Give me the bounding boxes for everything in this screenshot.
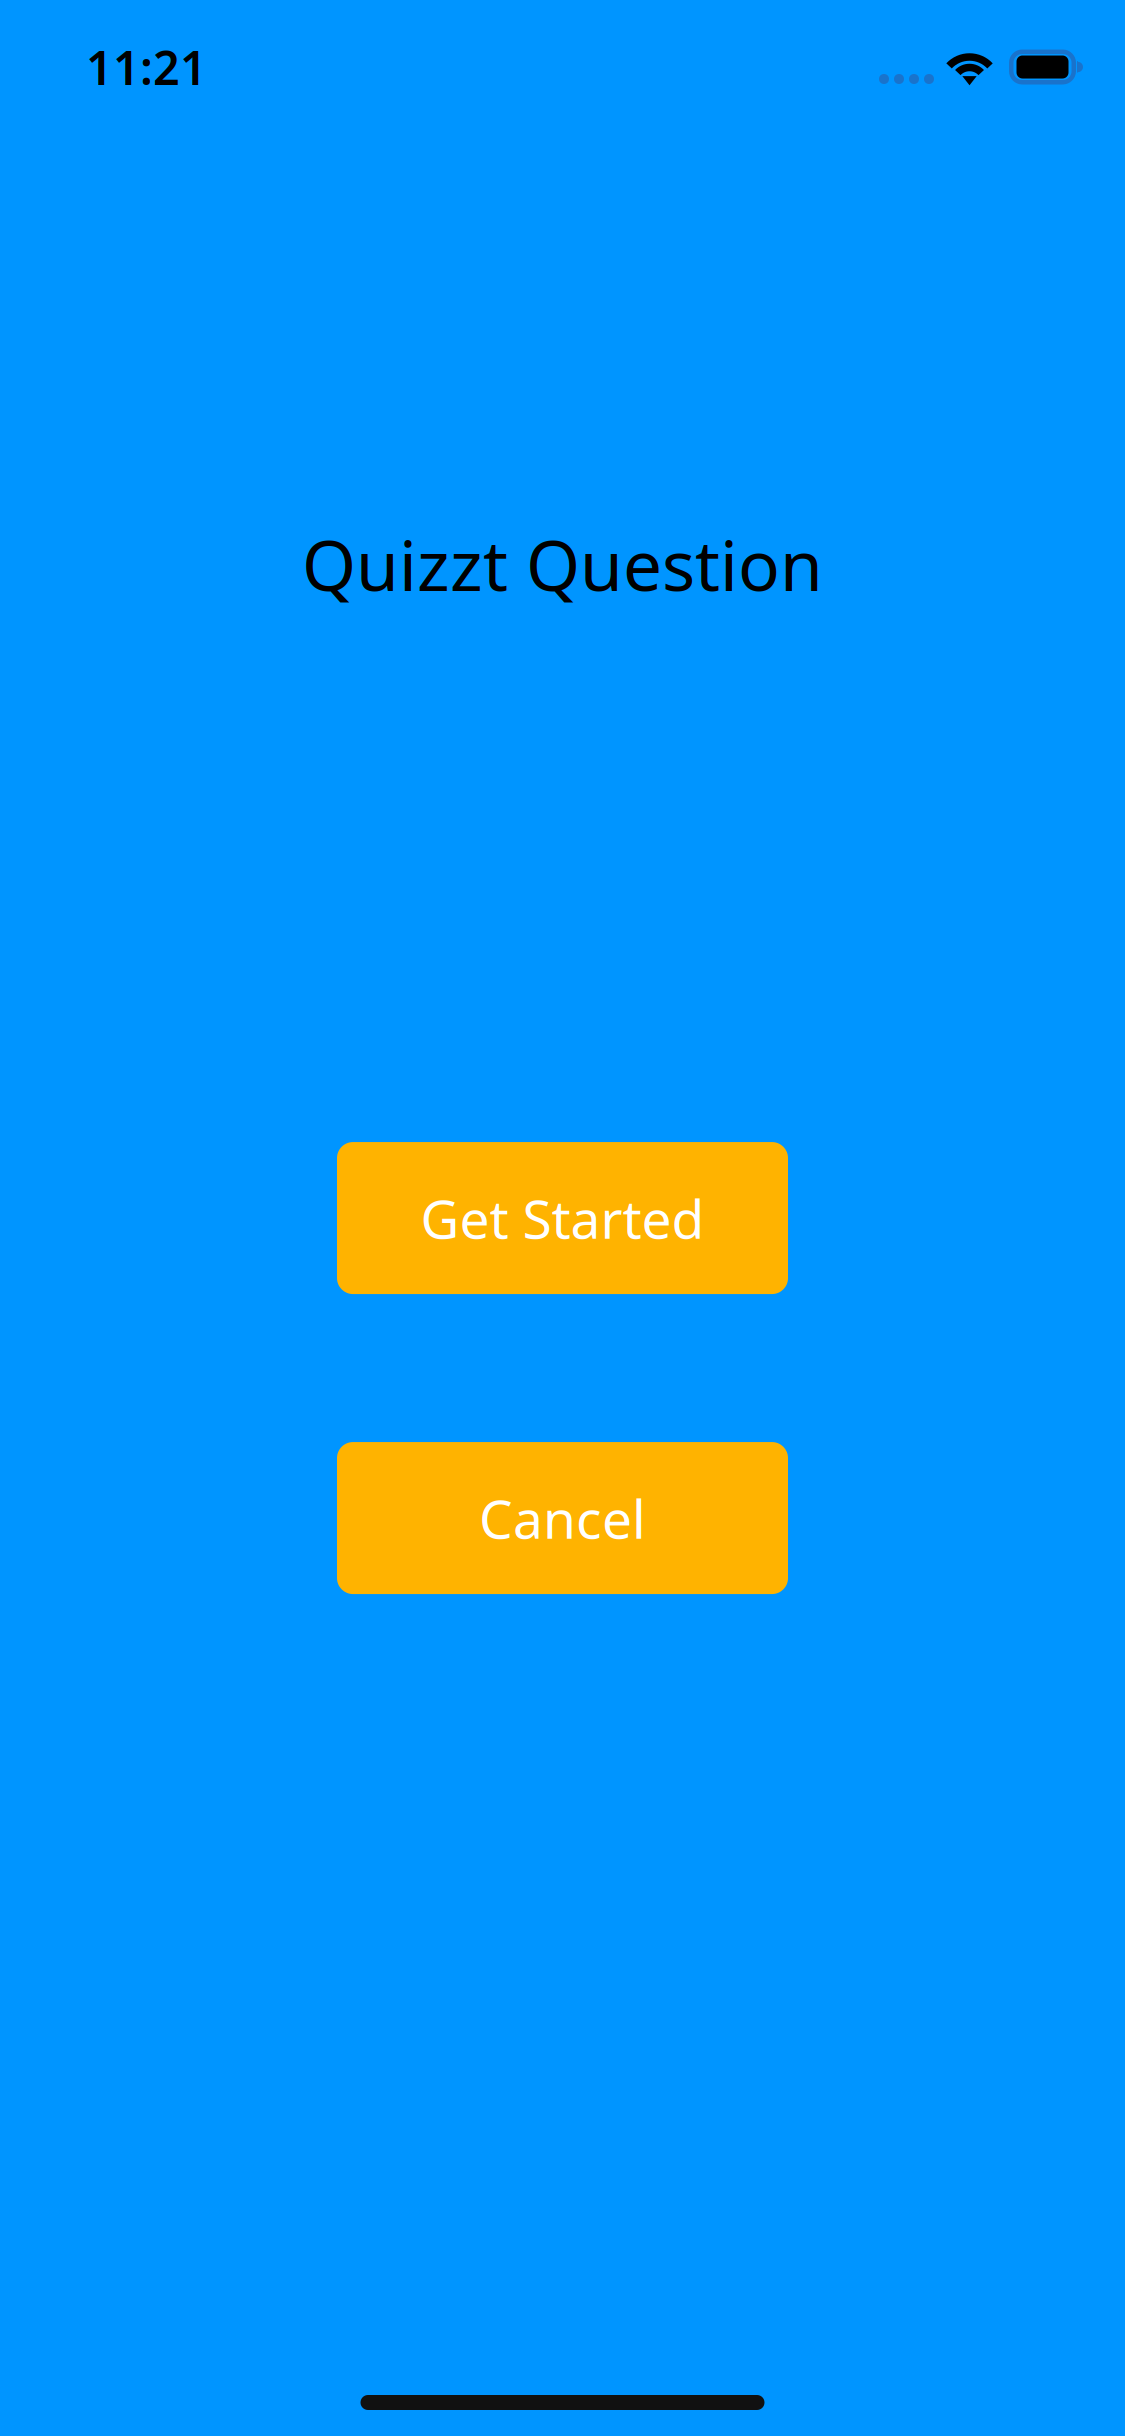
staticText: 11:21 (86, 36, 207, 98)
button[interactable]: Cancel (337, 1442, 788, 1594)
button[interactable]: Get Started (337, 1142, 788, 1294)
staticText: Cancel (479, 1483, 646, 1553)
staticText: Quizzt Question (302, 518, 823, 610)
staticText: Get Started (420, 1183, 704, 1253)
